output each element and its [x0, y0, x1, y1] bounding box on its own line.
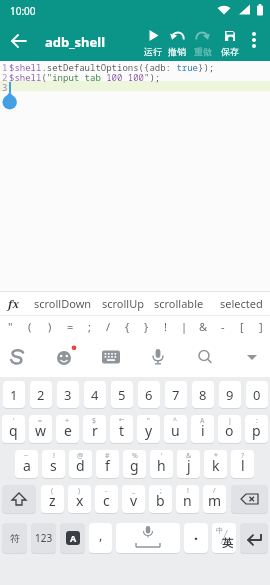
button[interactable]: ^: [164, 415, 187, 443]
button[interactable]: {: [118, 316, 137, 337]
button[interactable]: [246, 27, 266, 57]
button[interactable]: 4: [84, 381, 106, 408]
button[interactable]: /: [203, 485, 226, 513]
button[interactable]: 符: [2, 523, 27, 553]
button[interactable]: _: [122, 485, 145, 513]
button[interactable]: [149, 346, 167, 368]
staticText: -: [105, 486, 108, 496]
button[interactable]: ": [0, 316, 20, 337]
button[interactable]: +: [56, 415, 79, 443]
staticText: #: [105, 451, 110, 461]
button[interactable]: !: [176, 485, 199, 513]
staticText: ;: [88, 319, 91, 334]
button[interactable]: *: [204, 450, 227, 478]
staticText: $shell("input tab 100 100");: [9, 71, 161, 83]
staticText: :: [256, 416, 258, 426]
button[interactable]: .: [184, 523, 208, 553]
staticText: ;: [160, 486, 162, 496]
button[interactable]: [54, 346, 78, 368]
button[interactable]: =: [29, 415, 52, 443]
button[interactable]: [: [232, 316, 251, 337]
button[interactable]: (: [20, 316, 40, 337]
button[interactable]: |: [218, 415, 241, 443]
button[interactable]: &: [194, 316, 213, 337]
button[interactable]: ": [137, 415, 160, 443]
staticText: j: [187, 456, 191, 475]
button[interactable]: [7, 346, 27, 368]
staticText: fx: [8, 296, 20, 311]
button[interactable]: (: [41, 485, 64, 513]
staticText: +: [65, 416, 70, 426]
staticText: 1: [2, 61, 8, 73]
staticText: /: [213, 486, 216, 496]
button[interactable]: ]: [251, 316, 270, 337]
button[interactable]: 1: [3, 381, 25, 408]
button[interactable]: 5: [111, 381, 133, 408]
button[interactable]: ?: [231, 450, 254, 478]
staticText: i: [201, 421, 205, 440]
staticText: p: [252, 421, 261, 440]
button[interactable]: A: [60, 523, 85, 553]
button[interactable]: @: [69, 450, 92, 478]
button[interactable]: fx: [4, 294, 24, 312]
button[interactable]: 7: [165, 381, 187, 408]
button[interactable]: 重做: [190, 27, 216, 57]
staticText: =: [67, 319, 74, 334]
button[interactable]: [101, 346, 121, 368]
button[interactable]: [116, 523, 180, 553]
button[interactable]: ;: [149, 485, 172, 513]
button[interactable]: #: [96, 450, 119, 478]
button[interactable]: }: [137, 316, 156, 337]
button[interactable]: 123: [31, 523, 56, 553]
staticText: 3: [64, 386, 72, 404]
button[interactable]: [231, 485, 268, 513]
staticText: !: [53, 451, 55, 461]
button[interactable]: ~: [15, 450, 38, 478]
button[interactable]: =: [60, 316, 80, 337]
staticText: 3: [2, 81, 8, 93]
button[interactable]: ;: [80, 316, 99, 337]
button[interactable]: ': [150, 450, 173, 478]
button[interactable]: [6, 28, 32, 54]
staticText: 运行: [144, 46, 162, 57]
button[interactable]: ): [68, 485, 91, 513]
button[interactable]: 3: [57, 381, 79, 408]
staticText: ←: [119, 416, 125, 424]
button[interactable]: -: [95, 485, 118, 513]
button[interactable]: A: [191, 415, 214, 443]
button[interactable]: |: [175, 316, 194, 337]
button[interactable]: [243, 346, 261, 368]
button[interactable]: $: [83, 415, 106, 443]
staticText: %: [132, 451, 138, 461]
button[interactable]: 6: [138, 381, 160, 408]
staticText: 0: [253, 386, 261, 404]
button[interactable]: ): [40, 316, 60, 337]
button[interactable]: -: [213, 316, 232, 337]
button[interactable]: 8: [192, 381, 214, 408]
button[interactable]: ←: [110, 415, 133, 443]
button[interactable]: ': [2, 415, 25, 443]
staticText: b: [156, 491, 165, 510]
button[interactable]: 中: [212, 523, 236, 553]
staticText: scrollable: [154, 296, 204, 311]
button[interactable]: 9: [219, 381, 241, 408]
button[interactable]: 0: [246, 381, 268, 408]
button[interactable]: %: [123, 450, 146, 478]
button[interactable]: 2: [30, 381, 52, 408]
button[interactable]: !: [156, 316, 175, 337]
button[interactable]: /: [99, 316, 118, 337]
button[interactable]: 撤销: [164, 27, 190, 57]
button[interactable]: !: [42, 450, 65, 478]
button[interactable]: [195, 346, 215, 368]
button[interactable]: [2, 485, 36, 513]
button[interactable]: 保存: [217, 27, 243, 57]
staticText: scrollDown: [34, 296, 92, 311]
button[interactable]: [240, 523, 268, 553]
staticText: v: [130, 491, 138, 510]
staticText: 撤销: [168, 46, 186, 57]
button[interactable]: :: [245, 415, 268, 443]
button[interactable]: 运行: [140, 27, 166, 57]
button[interactable]: &: [177, 450, 200, 478]
button[interactable]: ,: [89, 523, 112, 553]
staticText: scrollUp: [102, 296, 145, 311]
